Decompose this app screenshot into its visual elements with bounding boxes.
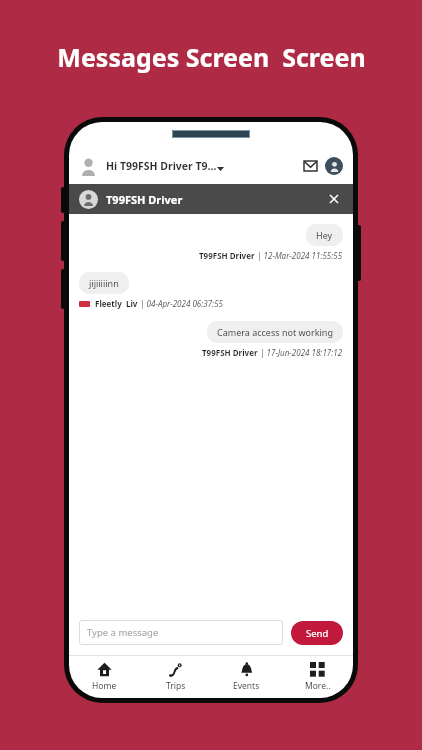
button[interactable]: Send <box>291 621 343 645</box>
staticText: T99FSH Driver <box>199 250 255 261</box>
button[interactable]: Type a message <box>79 620 283 645</box>
staticText: Hi T99FSH Driver T9… <box>106 159 217 173</box>
button[interactable]: Mail <box>300 156 320 176</box>
staticText: Camera access not working <box>217 326 333 338</box>
staticText: jijiiiiinn <box>89 277 119 289</box>
staticText: T99FSH Driver <box>106 192 183 207</box>
staticText: Events <box>233 680 260 692</box>
staticText: Type a message <box>87 626 159 639</box>
button[interactable]: Events <box>211 656 282 698</box>
button[interactable]: Hi T99FSH Driver T9… <box>69 148 353 184</box>
button[interactable]: Trips <box>140 656 211 698</box>
staticText: Send <box>306 627 329 640</box>
staticText: Messages Screen Screen <box>57 40 366 74</box>
staticText: More.. <box>305 680 331 692</box>
staticText: Home <box>92 680 117 692</box>
button[interactable]: Hey <box>306 224 343 246</box>
staticText: | 12-Mar-2024 11:55:55 <box>255 250 343 261</box>
button[interactable]: More.. <box>282 656 353 698</box>
button[interactable]: Close <box>325 190 343 208</box>
button[interactable]: Account <box>325 157 343 175</box>
button[interactable]: Camera access not working <box>207 321 343 343</box>
staticText: Fleetly Liv <box>95 298 138 309</box>
button[interactable]: jijiiiiinn <box>79 272 129 294</box>
staticText: | 17-Jun-2024 18:17:12 <box>258 347 343 358</box>
button[interactable]: Home <box>69 656 140 698</box>
staticText: Hey <box>316 229 333 241</box>
staticText: T99FSH Driver <box>202 347 258 358</box>
staticText: Trips <box>166 680 186 692</box>
staticText: | 04-Apr-2024 06:37:55 <box>138 298 223 309</box>
